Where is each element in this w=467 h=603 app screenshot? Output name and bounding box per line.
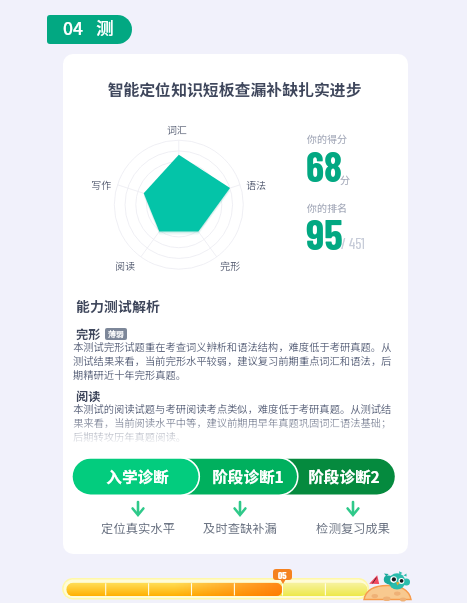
staticText: 你的排名 xyxy=(307,200,347,214)
button[interactable]: 05 xyxy=(273,569,292,580)
staticText: 本测试的阅读试题与考研阅读考点类似，难度低于考研真题。从测试结果来看，当前阅读水… xyxy=(73,401,397,443)
other: Next step xyxy=(345,501,361,516)
staticText: / 451 xyxy=(341,234,365,252)
staticText: 智能定位知识短板查漏补缺扎实进步 xyxy=(62,78,407,98)
staticText: 04 xyxy=(63,15,83,40)
staticText: 词汇 xyxy=(167,122,187,136)
other: Next step xyxy=(130,501,146,516)
staticText: 完形 xyxy=(76,325,101,343)
staticText: 05 xyxy=(278,569,287,580)
button[interactable]: 阶段诊断1 xyxy=(198,458,298,494)
button[interactable]: 入学诊断 xyxy=(87,458,187,494)
staticText: 95 xyxy=(306,208,343,258)
staticText: 阶段诊断1 xyxy=(212,465,284,488)
staticText: 检测复习成果 xyxy=(316,519,390,535)
button[interactable]: 阶段诊断2 xyxy=(294,458,394,494)
staticText: 测 xyxy=(96,15,114,40)
staticText: 68 xyxy=(306,141,343,190)
staticText: 阅读 xyxy=(76,387,101,405)
staticText: 写作 xyxy=(91,177,111,191)
staticText: 分 xyxy=(340,172,350,186)
staticText: 阅读 xyxy=(115,258,135,272)
staticText: 本测试完形试题重在考查词义辨析和语法结构，难度低于考研真题。从测试结果来看，当前… xyxy=(73,339,397,382)
staticText: 定位真实水平 xyxy=(101,519,175,535)
staticText: 语法 xyxy=(246,177,266,191)
staticText: 能力测试解析 xyxy=(76,296,160,316)
staticText: 入学诊断 xyxy=(106,465,169,488)
other: Mascot xyxy=(383,571,411,591)
other: Next step xyxy=(232,501,248,516)
staticText: 薄弱 xyxy=(108,328,124,340)
staticText: 及时查缺补漏 xyxy=(203,519,277,535)
button[interactable]: 04 xyxy=(47,15,132,44)
staticText: 你的得分 xyxy=(307,131,347,145)
staticText: 阶段诊断2 xyxy=(308,465,380,488)
staticText: 完形 xyxy=(220,258,240,272)
